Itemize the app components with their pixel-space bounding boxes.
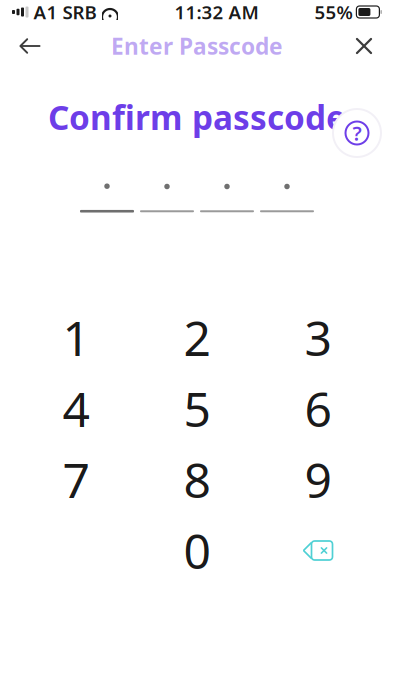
staticText: 55% <box>314 0 352 24</box>
button[interactable]: 7 <box>15 444 136 515</box>
staticText: ? <box>352 120 361 146</box>
button[interactable]: 1 <box>15 302 136 373</box>
staticText: Confirm passcode <box>48 95 346 139</box>
button[interactable]: 4 <box>15 373 136 444</box>
staticText: 3 <box>304 306 331 369</box>
button[interactable]: 2 <box>136 302 257 373</box>
staticText: A1 SRB <box>33 0 96 24</box>
button[interactable]: Delete <box>257 515 378 586</box>
button[interactable]: 8 <box>136 444 257 515</box>
staticText: 1 <box>62 306 89 369</box>
staticText: 9 <box>304 448 331 511</box>
staticText: 6 <box>304 377 331 440</box>
staticText: 11:32 AM <box>174 0 258 24</box>
button[interactable]: 5 <box>136 373 257 444</box>
staticText: Enter Passcode <box>111 31 283 61</box>
button[interactable]: Help <box>332 108 382 158</box>
staticText: 8 <box>183 448 210 511</box>
staticText: 7 <box>62 448 89 511</box>
staticText: 0 <box>183 519 210 582</box>
button[interactable]: 3 <box>257 302 378 373</box>
staticText: 2 <box>183 306 210 369</box>
button[interactable]: 6 <box>257 373 378 444</box>
staticText: 5 <box>183 377 210 440</box>
button[interactable]: 9 <box>257 444 378 515</box>
button[interactable]: Back <box>8 24 52 68</box>
button[interactable]: Close <box>342 24 386 68</box>
staticText: 4 <box>62 377 89 440</box>
button[interactable]: 0 <box>136 515 257 586</box>
